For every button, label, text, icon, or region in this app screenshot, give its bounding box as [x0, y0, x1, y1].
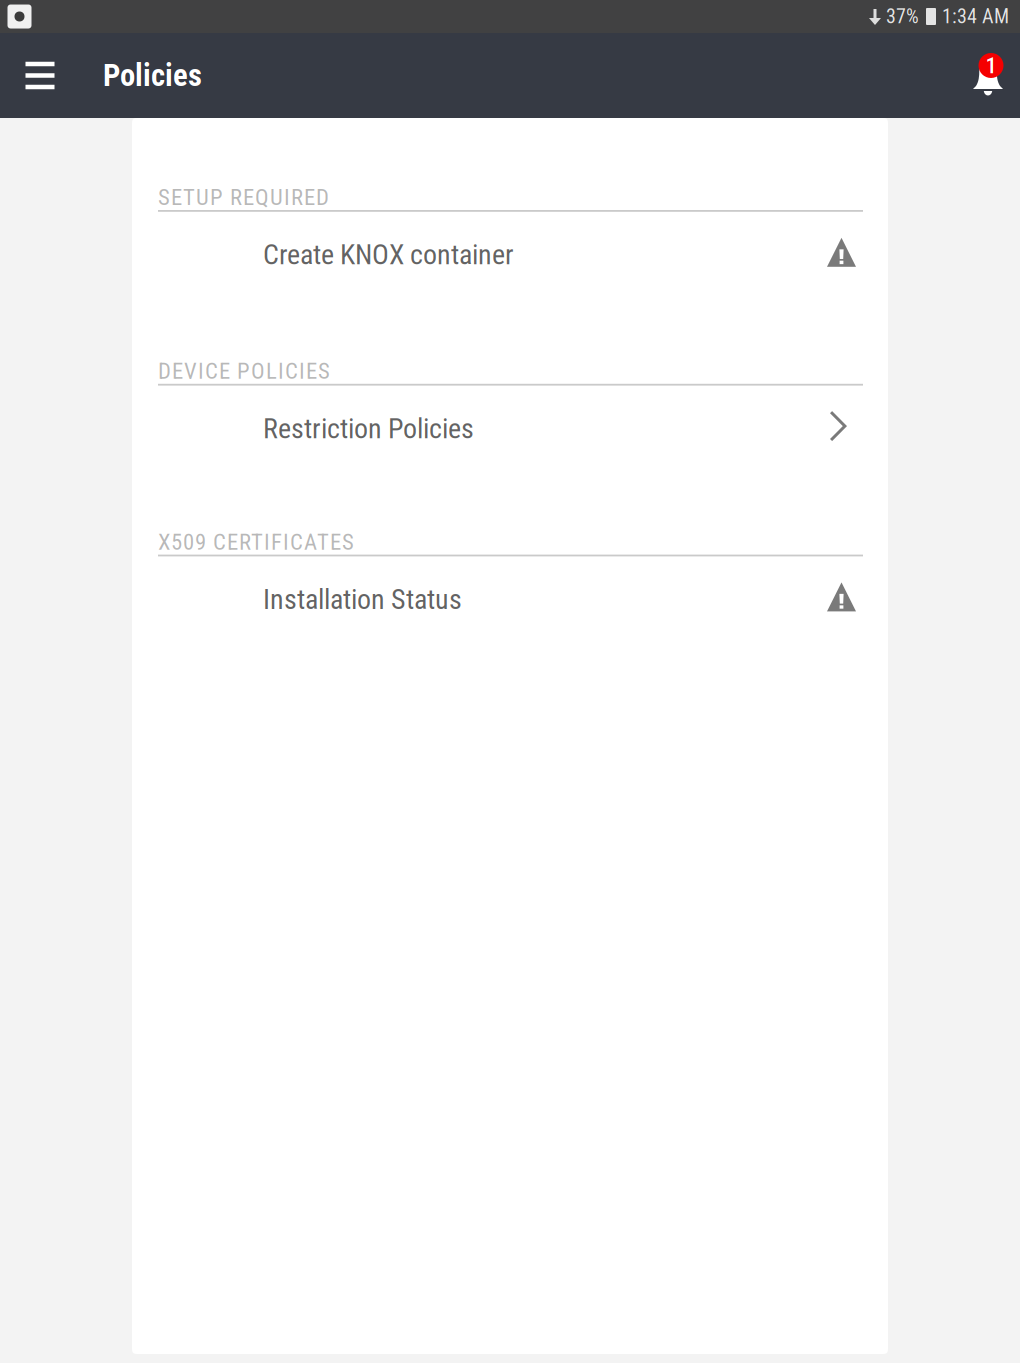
button[interactable]: Create KNOX container [132, 212, 888, 298]
staticText: 1 [985, 52, 996, 79]
staticText: Restriction Policies [263, 412, 474, 445]
staticText: Policies [103, 57, 202, 93]
button[interactable]: Installation Status [132, 556, 888, 642]
staticText: 37% [886, 5, 919, 28]
button[interactable]: Restriction Policies [132, 386, 888, 472]
button[interactable]: Menu [0, 33, 80, 118]
staticText: Create KNOX container [263, 238, 514, 271]
staticText: X509 CERTIFICATES [158, 529, 354, 555]
staticText: SETUP REQUIRED [158, 184, 329, 211]
button[interactable]: Notifications [956, 33, 1020, 118]
staticText: DEVICE POLICIES [158, 358, 330, 384]
staticText: Installation Status [263, 583, 462, 616]
staticText: 1:34 AM [942, 5, 1009, 28]
